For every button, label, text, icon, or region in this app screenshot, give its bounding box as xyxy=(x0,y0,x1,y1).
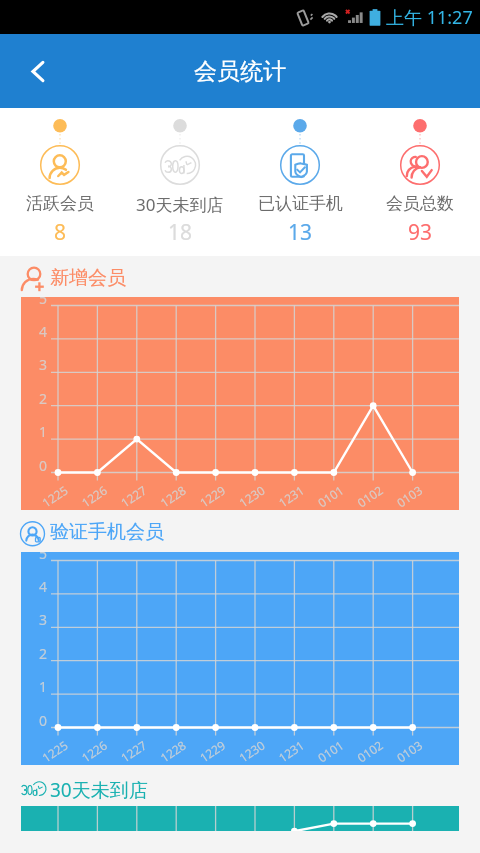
staticText: 验证手机会员 xyxy=(50,520,164,544)
staticText: 13 xyxy=(288,218,313,247)
staticText: 93 xyxy=(408,218,433,247)
button[interactable]: 活跃会员 xyxy=(0,108,120,256)
staticText: 8 xyxy=(54,218,67,247)
staticText: 已认证手机 xyxy=(258,193,343,214)
staticText: 会员统计 xyxy=(194,57,286,86)
staticText: 30天未到店 xyxy=(50,777,148,803)
staticText: 会员总数 xyxy=(386,193,454,214)
staticText: 18 xyxy=(168,218,193,247)
button[interactable]: 会员总数 xyxy=(360,108,480,256)
button[interactable]: 已认证手机 xyxy=(240,108,360,256)
staticText: 活跃会员 xyxy=(26,193,94,214)
button[interactable]: 30天未到店 xyxy=(120,108,240,256)
button[interactable]: Back xyxy=(0,34,74,108)
staticText: 30天未到店 xyxy=(136,193,224,216)
staticText: 新增会员 xyxy=(50,266,126,290)
staticText: 上午 11:27 xyxy=(386,5,473,30)
